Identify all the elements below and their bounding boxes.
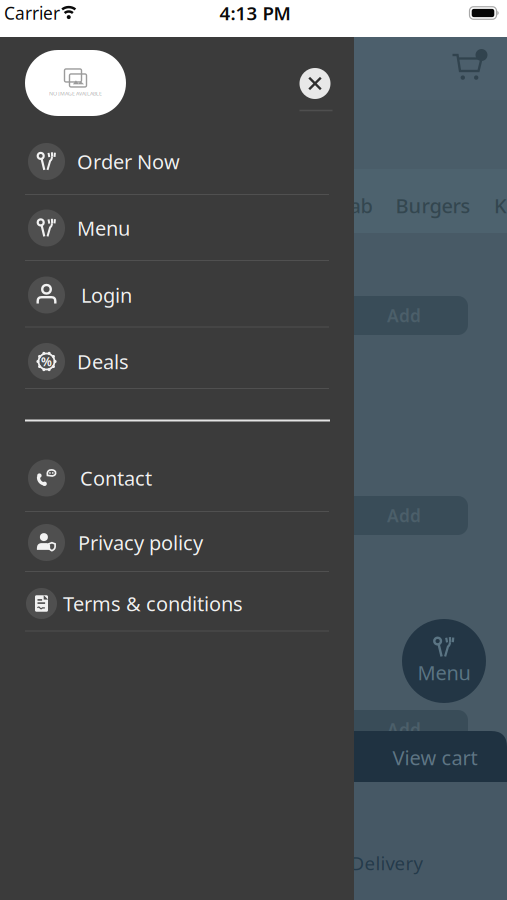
staticText: Burgers (395, 192, 470, 219)
staticText: Privacy policy (78, 529, 203, 556)
button[interactable]: Contact (28, 459, 354, 496)
staticText: Add (387, 504, 421, 527)
staticText: Terms & conditions (63, 590, 243, 617)
staticText: Kids (494, 192, 507, 219)
staticText: Menu (417, 659, 470, 686)
button[interactable]: Close (299, 68, 330, 99)
button[interactable]: View cart (0, 731, 507, 782)
button[interactable]: Add (340, 496, 468, 535)
staticText: Menu (77, 215, 130, 241)
button[interactable]: Terms & conditions (23, 585, 349, 622)
button[interactable]: Add (340, 296, 468, 335)
staticText: Login (81, 282, 132, 308)
button[interactable]: Menu (402, 619, 486, 703)
staticText: Delivery (350, 851, 423, 875)
button[interactable]: Menu (28, 209, 354, 246)
button[interactable]: Order Now (28, 143, 354, 180)
staticText: Kebab (313, 192, 372, 219)
staticText: Add (387, 718, 421, 741)
button[interactable]: Add (340, 710, 468, 749)
staticText: 4:13 PM (219, 1, 290, 25)
staticText: View cart (392, 744, 477, 771)
staticText: Add (387, 304, 421, 327)
button[interactable]: Burgers (395, 192, 470, 219)
staticText: NO IMAGE AVAILABLE (49, 90, 102, 97)
button[interactable]: Privacy policy (28, 524, 354, 561)
staticText: Carrier (4, 1, 60, 24)
staticText: % (41, 353, 52, 369)
button[interactable]: Cart (452, 49, 488, 81)
button[interactable]: % (28, 343, 354, 380)
staticText: Contact (80, 465, 152, 491)
button[interactable]: Login (28, 276, 354, 313)
staticText: Deals (77, 348, 129, 375)
staticText: Order Now (77, 148, 180, 175)
